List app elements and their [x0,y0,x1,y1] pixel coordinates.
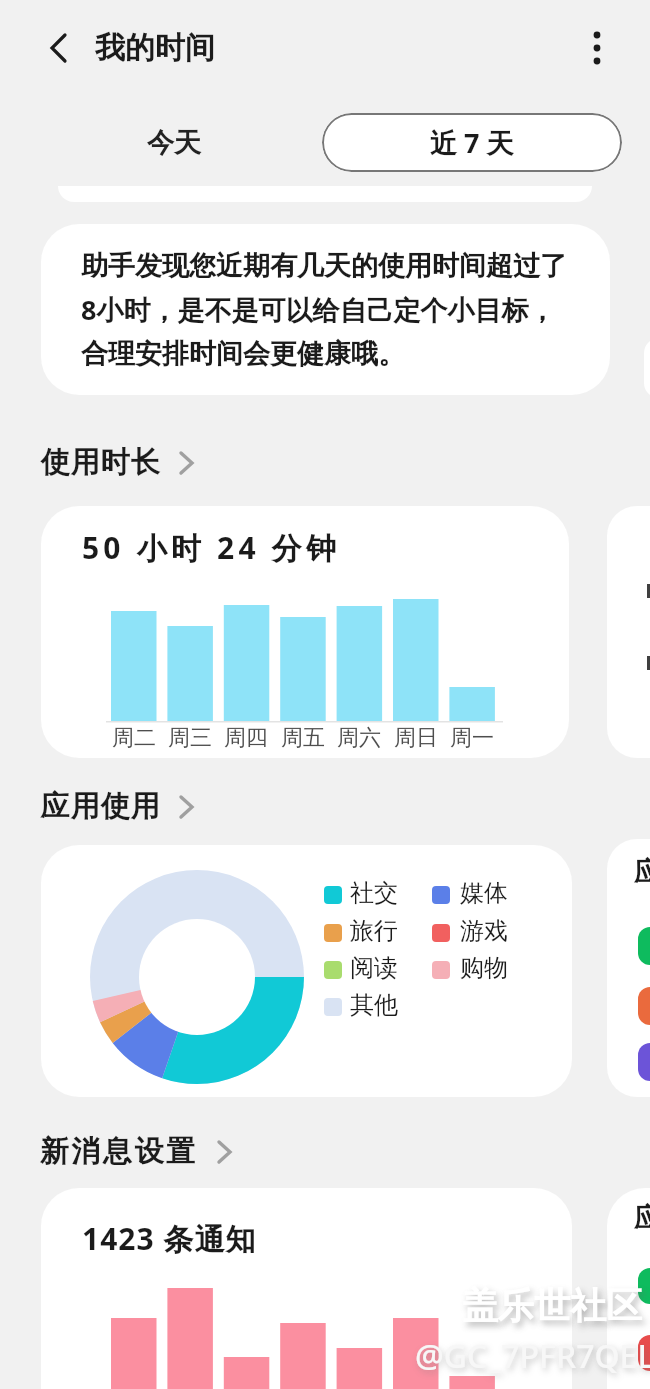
button[interactable] [34,23,84,73]
staticText: 我的时间 [95,29,215,67]
button[interactable]: 应用使用 [40,788,196,825]
staticText: 应 [634,1201,650,1235]
staticText: 媒体 [460,878,508,908]
staticText: 50 小时 24 分钟 [82,527,341,568]
staticText: 社交 [350,878,398,908]
staticText: 应用使用 [40,788,160,825]
staticText: 盖乐世社区 [462,1283,642,1328]
button[interactable]: 50 小时 24 分钟 [41,506,569,758]
staticText: 周六 [337,724,381,750]
button[interactable] [572,23,622,73]
staticText: 周四 [224,724,268,750]
staticText: 阅读 [350,953,398,983]
button[interactable]: 社交 [41,845,572,1097]
button[interactable]: 今天 [114,113,234,172]
staticText: 使用时长 [40,444,160,481]
staticText: 周三 [168,724,212,750]
button[interactable]: 1423 条通知 [41,1188,572,1389]
button[interactable]: 新消息设置 [40,1133,234,1170]
staticText: 应 [634,855,650,889]
button[interactable]: 使用时长 [40,444,196,481]
staticText: 购物 [460,953,508,983]
staticText: 今天 [147,126,201,160]
staticText: @GC_7PFR7QEL [415,1334,650,1378]
staticText: 其他 [350,990,398,1020]
staticText: 周一 [450,724,494,750]
staticText: 周二 [112,724,156,750]
staticText: 近 7 天 [430,124,514,161]
staticText: 1423 条通知 [82,1218,257,1259]
staticText: 助手发现您近期有几天的使用时间超过了 8小时，是不是可以给自己定个小目标， 合理… [81,249,567,371]
staticText: 游戏 [460,916,508,946]
staticText: 周日 [394,724,438,750]
button[interactable]: 近 7 天 [322,113,622,172]
staticText: 旅行 [350,916,398,946]
staticText: 新消息设置 [40,1133,198,1170]
staticText: 周五 [281,724,325,750]
